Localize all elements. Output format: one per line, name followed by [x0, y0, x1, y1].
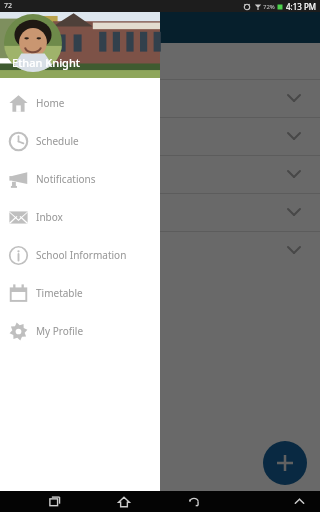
staticText: Timetable: [36, 286, 83, 300]
button[interactable]: My Profile: [0, 312, 160, 350]
staticText: My Profile: [36, 324, 84, 338]
staticText: Inbox: [36, 210, 63, 224]
button[interactable]: [0, 231, 320, 269]
staticText: Schedule: [36, 134, 79, 148]
button[interactable]: Recents: [37, 491, 71, 512]
button[interactable]: Schedule: [0, 122, 160, 160]
button[interactable]: Home: [0, 84, 160, 122]
button[interactable]: Back: [177, 491, 211, 512]
staticText: 4:13 PM: [286, 1, 317, 12]
button[interactable]: Open navigation drawer: [0, 12, 44, 43]
button[interactable]: [0, 79, 320, 117]
button[interactable]: Add: [263, 441, 307, 485]
staticText: 09-12-2015: [12, 62, 65, 76]
staticText: School Information: [36, 248, 127, 262]
staticText: Home: [36, 96, 65, 110]
staticText: 72: [4, 1, 13, 11]
staticText: Wednesday: [12, 46, 73, 61]
button[interactable]: Timetable: [0, 274, 160, 312]
button[interactable]: [0, 155, 320, 193]
button[interactable]: [0, 193, 320, 231]
button[interactable]: School Information: [0, 236, 160, 274]
button[interactable]: Expand: [284, 491, 314, 512]
button[interactable]: Notifications: [0, 160, 160, 198]
staticText: Ethan Knight: [12, 55, 81, 70]
staticText: Notifications: [36, 172, 96, 186]
staticText: Home: [44, 18, 85, 37]
button[interactable]: Profile photo: [4, 14, 62, 72]
button[interactable]: Inbox: [0, 198, 160, 236]
button[interactable]: Home: [107, 491, 141, 512]
staticText: 72%: [263, 3, 275, 11]
button[interactable]: [0, 117, 320, 155]
